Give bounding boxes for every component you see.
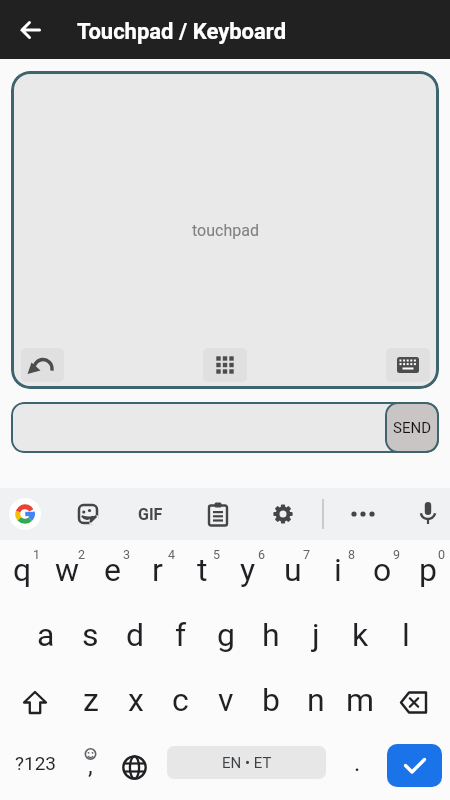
button[interactable]	[21, 348, 64, 382]
button[interactable]: b	[248, 667, 293, 732]
button[interactable]: i	[315, 537, 360, 602]
button[interactable]: j	[293, 602, 338, 667]
button[interactable]: EN • ET	[167, 746, 326, 779]
button[interactable]: u	[270, 537, 315, 602]
staticText: h	[262, 616, 280, 654]
button[interactable]: t	[180, 537, 225, 602]
staticText: b	[262, 681, 280, 719]
button[interactable]: y	[225, 537, 270, 602]
button[interactable]: n	[293, 667, 338, 732]
button[interactable]: ?123	[11, 730, 61, 795]
button[interactable]: SEND	[11, 402, 439, 453]
staticText: 2	[78, 547, 86, 562]
button[interactable]: q	[0, 537, 45, 602]
staticText: n	[307, 681, 325, 719]
button[interactable]	[13, 12, 49, 48]
staticText: 9	[393, 547, 401, 562]
button[interactable]	[72, 498, 104, 530]
button[interactable]: e	[90, 537, 135, 602]
staticText: e	[104, 551, 121, 589]
staticText: y	[240, 551, 256, 589]
button[interactable]	[203, 348, 247, 382]
staticText: w	[55, 551, 80, 589]
staticText: 5	[213, 547, 221, 562]
staticText: z	[83, 681, 99, 719]
staticText: 8	[348, 547, 356, 562]
staticText: GIF	[138, 505, 163, 524]
staticText: u	[284, 551, 302, 589]
staticText: SEND	[393, 419, 431, 437]
button[interactable]: v	[203, 667, 248, 732]
button[interactable]	[267, 498, 299, 530]
button[interactable]: p	[405, 537, 450, 602]
button[interactable]: z	[68, 667, 113, 732]
staticText: 6	[258, 547, 266, 562]
staticText: ?123	[15, 752, 57, 774]
button[interactable]: GIF	[128, 498, 172, 530]
staticText: k	[352, 616, 369, 654]
button[interactable]: r	[135, 537, 180, 602]
button[interactable]: h	[248, 602, 293, 667]
button[interactable]: o	[360, 537, 405, 602]
button[interactable]: c	[158, 667, 203, 732]
button[interactable]	[389, 670, 439, 735]
staticText: d	[126, 616, 145, 654]
staticText: 7	[303, 547, 311, 562]
staticText: 1	[33, 547, 41, 562]
button[interactable]: s	[68, 602, 113, 667]
staticText: f	[175, 616, 187, 654]
button[interactable]	[10, 670, 60, 735]
staticText: 4	[168, 547, 176, 562]
staticText: p	[419, 551, 437, 589]
staticText: s	[82, 616, 99, 654]
button[interactable]: l	[383, 602, 428, 667]
staticText: q	[13, 551, 32, 589]
staticText: .	[354, 749, 361, 777]
staticText: l	[402, 616, 410, 654]
staticText: v	[218, 681, 234, 719]
staticText: a	[37, 616, 55, 654]
button[interactable]: g	[203, 602, 248, 667]
button[interactable]: .	[335, 730, 380, 795]
button[interactable]	[412, 498, 444, 530]
button[interactable]: touchpad	[11, 71, 439, 389]
button[interactable]	[112, 735, 157, 800]
button[interactable]: ,	[67, 735, 112, 800]
button[interactable]: x	[113, 667, 158, 732]
staticText: t	[197, 551, 208, 589]
button[interactable]: f	[158, 602, 203, 667]
button[interactable]: w	[45, 537, 90, 602]
button[interactable]	[9, 498, 41, 530]
button[interactable]: d	[113, 602, 158, 667]
staticText: 0	[438, 547, 446, 562]
button[interactable]	[202, 498, 234, 530]
staticText: r	[152, 551, 163, 589]
staticText: Touchpad / Keyboard	[77, 19, 287, 45]
button[interactable]: a	[23, 602, 68, 667]
staticText: o	[373, 551, 392, 589]
staticText: touchpad	[192, 221, 259, 240]
staticText: ,	[88, 752, 93, 780]
staticText: x	[128, 681, 144, 719]
staticText: m	[346, 681, 375, 719]
staticText: j	[312, 616, 320, 654]
button[interactable]: k	[338, 602, 383, 667]
staticText: g	[217, 616, 235, 654]
button[interactable]	[387, 744, 442, 787]
button[interactable]: SEND	[385, 402, 439, 453]
button[interactable]	[345, 498, 381, 530]
button[interactable]	[386, 348, 430, 382]
staticText: i	[334, 551, 342, 589]
button[interactable]: m	[338, 667, 383, 732]
staticText: c	[172, 681, 189, 719]
staticText: EN • ET	[222, 754, 272, 772]
staticText: 3	[123, 547, 131, 562]
